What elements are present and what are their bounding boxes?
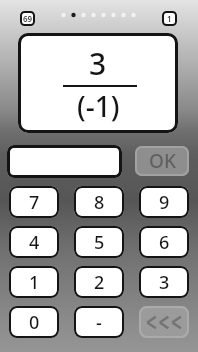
button[interactable]: OK bbox=[135, 146, 189, 176]
staticText: 1 bbox=[29, 270, 40, 295]
button[interactable]: 8 bbox=[74, 186, 124, 218]
staticText: 69 bbox=[23, 13, 33, 24]
button[interactable] bbox=[139, 306, 189, 338]
button[interactable]: 1 bbox=[162, 11, 177, 26]
button[interactable]: 7 bbox=[9, 186, 59, 218]
staticText: 9 bbox=[159, 190, 170, 215]
button[interactable]: 69 bbox=[20, 11, 35, 26]
staticText: 1 bbox=[167, 13, 172, 24]
staticText: OK bbox=[149, 148, 176, 174]
staticText: (-1) bbox=[77, 87, 120, 125]
staticText: 7 bbox=[29, 190, 40, 215]
button[interactable] bbox=[7, 145, 122, 178]
button[interactable]: 4 bbox=[9, 226, 59, 258]
button[interactable]: 1 bbox=[9, 266, 59, 298]
staticText: 3 bbox=[89, 43, 107, 84]
staticText: 8 bbox=[94, 190, 105, 215]
button[interactable]: 0 bbox=[9, 306, 59, 338]
staticText: 6 bbox=[159, 230, 170, 255]
button[interactable]: - bbox=[74, 306, 124, 338]
button[interactable]: 6 bbox=[139, 226, 189, 258]
staticText: 4 bbox=[29, 230, 40, 255]
staticText: 5 bbox=[94, 230, 105, 255]
staticText: 0 bbox=[29, 310, 40, 335]
button[interactable]: 9 bbox=[139, 186, 189, 218]
staticText: 2 bbox=[94, 270, 105, 295]
button[interactable]: 3 bbox=[139, 266, 189, 298]
button[interactable]: 5 bbox=[74, 226, 124, 258]
staticText: - bbox=[96, 310, 102, 335]
button[interactable]: 2 bbox=[74, 266, 124, 298]
staticText: 3 bbox=[159, 270, 170, 295]
